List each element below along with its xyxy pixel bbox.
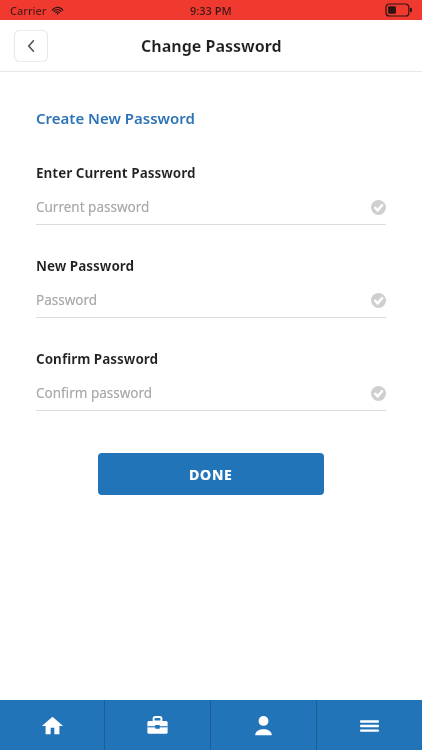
button[interactable]: DONE	[98, 453, 324, 495]
staticText: Create New Password	[36, 108, 195, 128]
staticText: Confirm Password	[36, 350, 159, 368]
staticText: Confirm password	[36, 384, 153, 402]
staticText: DONE	[189, 465, 233, 484]
staticText: Enter Current Password	[36, 164, 196, 182]
staticText: Current password	[36, 198, 150, 216]
button[interactable]: Back	[14, 30, 48, 62]
staticText: 9:33 PM	[190, 3, 232, 18]
staticText: Password	[36, 291, 98, 309]
button[interactable]: Menu	[317, 700, 422, 750]
staticText: New Password	[36, 257, 135, 275]
staticText: Change Password	[141, 35, 282, 57]
button[interactable]: Work	[105, 700, 210, 750]
button[interactable]: Profile	[211, 700, 316, 750]
button[interactable]: Home	[0, 700, 104, 750]
staticText: Carrier	[10, 3, 47, 18]
